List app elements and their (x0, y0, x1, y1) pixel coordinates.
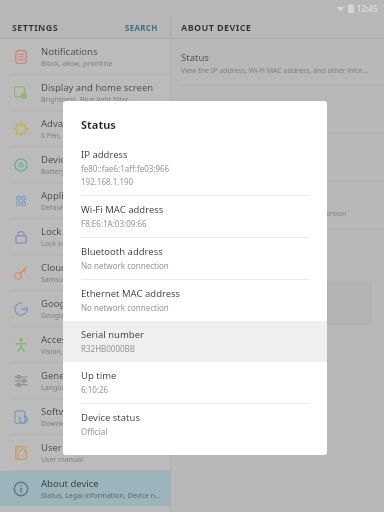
staticText: No network connection (81, 302, 169, 313)
staticText: General management (41, 369, 139, 382)
staticText: Samsung Cloud, Backup (41, 275, 121, 285)
button[interactable]: Legal information (171, 94, 384, 127)
staticText: Applications (41, 189, 96, 202)
staticText: Language, Date and time, Reset (41, 383, 146, 393)
button[interactable]: Serial number (63, 321, 327, 362)
button[interactable]: IP address (63, 141, 327, 195)
staticText: Status, Legal information, Device name (41, 491, 164, 501)
button[interactable]: Notifications (0, 39, 170, 75)
staticText: Google (41, 297, 74, 310)
staticText: Vision, Hearing, Dexterity (41, 347, 125, 357)
button[interactable]: Accessibility (0, 327, 170, 363)
staticText: User manual (41, 455, 83, 465)
staticText: Notifications (41, 45, 98, 58)
staticText: Lock screen and security (41, 225, 151, 238)
staticText: Software update (41, 405, 115, 418)
staticText: Download updates, Scheduled software… (41, 419, 164, 429)
button[interactable]: General management (0, 363, 170, 399)
button[interactable]: Bluetooth address (63, 238, 327, 279)
staticText: IP address (81, 148, 128, 161)
staticText: 6:10:26 (81, 384, 109, 395)
staticText: Ethernet MAC address (81, 287, 181, 300)
staticText: Display and home screen (41, 81, 154, 94)
button[interactable]: Wi-Fi MAC address (63, 196, 327, 237)
button[interactable]: Advanced features (0, 111, 170, 147)
staticText: Software info (181, 194, 241, 207)
button[interactable]: Display and home screen (0, 75, 170, 111)
button[interactable]: Device name (171, 142, 384, 175)
staticText: Status (81, 117, 116, 132)
staticText: No network connection (81, 260, 169, 271)
button[interactable]: Device maintenance (0, 147, 170, 183)
staticText: 192.168.1.190 (81, 176, 134, 187)
staticText: Google settings (41, 311, 93, 321)
button[interactable]: About device (0, 471, 170, 506)
staticText: S Pen, Games, One-handed mode (41, 131, 152, 141)
staticText: Status (181, 51, 209, 64)
staticText: User manual (41, 441, 98, 454)
staticText: fe80::fae6:1aff:fe03:966 (81, 163, 170, 174)
staticText: Default apps, Application manager (41, 203, 156, 213)
staticText: Official (81, 426, 108, 437)
staticText: SETTINGS (12, 21, 59, 33)
staticText: ABOUT DEVICE (181, 21, 252, 33)
staticText: View the IP address, Wi-Fi MAC address, … (181, 66, 374, 76)
button[interactable]: Lock screen and security (0, 219, 170, 255)
staticText: Brightness, Blue light filter (41, 95, 129, 105)
staticText: F8:E6:1A:03:09:66 (81, 218, 147, 229)
button[interactable]: SEARCH (123, 20, 160, 35)
staticText: Up time (81, 369, 117, 382)
staticText: Battery, Storage, Memory (41, 167, 126, 177)
button[interactable]: User manual (0, 435, 170, 471)
button[interactable]: Applications (0, 183, 170, 219)
staticText: R32HB0000BB (81, 343, 135, 354)
button[interactable]: Up time (63, 362, 327, 403)
staticText: Device maintenance (41, 153, 132, 166)
staticText: Device status (81, 411, 140, 424)
button[interactable]: Google (0, 291, 170, 327)
staticText: Cloud and accounts (41, 261, 129, 274)
staticText: Bluetooth address (81, 245, 163, 258)
button[interactable]: Software update (0, 399, 170, 435)
staticText: Legal information (181, 98, 261, 111)
staticText: 12:45 (357, 3, 378, 14)
button[interactable]: Software info (171, 190, 384, 223)
button[interactable]: Battery info (171, 238, 384, 271)
button[interactable]: Ethernet MAC address (63, 280, 327, 321)
staticText: Android version, Baseband version, Kerne… (181, 209, 347, 219)
staticText: About device (41, 477, 99, 490)
staticText: Accessibility (41, 333, 95, 346)
staticText: Advanced features (41, 117, 125, 130)
staticText: Serial number (81, 328, 144, 341)
staticText: Wi-Fi MAC address (81, 203, 164, 216)
staticText: Block, allow, prioritise (41, 59, 113, 69)
button[interactable] (185, 281, 372, 325)
button[interactable]: Status (171, 47, 384, 80)
staticText: Lock screen, Fingerprints (41, 239, 124, 249)
button[interactable]: Cloud and accounts (0, 255, 170, 291)
button[interactable]: Device status (63, 404, 327, 445)
staticText: SEARCH (125, 22, 158, 33)
